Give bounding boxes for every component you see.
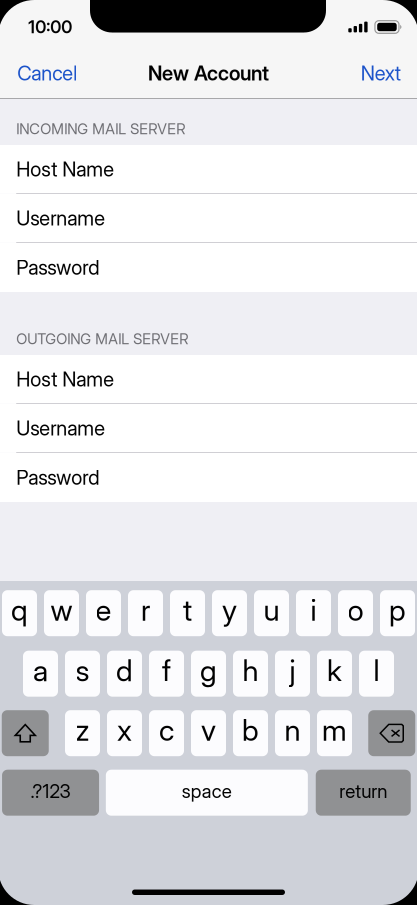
button[interactable]: y [212, 590, 247, 636]
staticText: h [242, 653, 258, 688]
staticText: x [117, 713, 132, 747]
button[interactable]: s [65, 651, 100, 697]
button[interactable]: Delete [368, 710, 415, 756]
button[interactable]: v [191, 710, 226, 756]
staticText: z [75, 713, 89, 747]
button[interactable]: k [317, 651, 352, 697]
button[interactable]: t [170, 590, 205, 636]
button[interactable]: Username [0, 194, 417, 242]
button[interactable]: w [44, 590, 79, 636]
staticText: return [339, 780, 387, 802]
staticText: New Account [148, 61, 269, 85]
button[interactable]: Host Name [0, 355, 417, 403]
staticText: t [183, 593, 192, 627]
staticText: OUTGOING MAIL SERVER [16, 330, 188, 347]
staticText: e [95, 593, 111, 627]
staticText: l [373, 653, 379, 688]
staticText: g [200, 653, 217, 688]
staticText: c [159, 713, 174, 747]
staticText: 10:00 [28, 17, 72, 37]
staticText: r [141, 593, 150, 627]
button[interactable]: Password [0, 243, 417, 292]
button[interactable]: Cancel [0, 49, 96, 98]
staticText: n [284, 713, 300, 747]
button[interactable]: i [296, 590, 331, 636]
staticText: m [322, 713, 347, 747]
button[interactable]: c [149, 710, 184, 756]
button[interactable]: m [317, 710, 352, 756]
staticText: Host Name [16, 367, 114, 391]
button[interactable]: h [233, 651, 268, 697]
staticText: a [33, 653, 48, 688]
button[interactable]: Password [0, 453, 417, 502]
staticText: b [242, 713, 259, 747]
staticText: Username [16, 206, 105, 230]
staticText: Cancel [17, 61, 77, 85]
staticText: p [389, 593, 406, 627]
button[interactable]: Next [343, 49, 417, 98]
button[interactable]: n [275, 710, 310, 756]
staticText: o [347, 593, 363, 627]
button[interactable]: g [191, 651, 226, 697]
staticText: w [50, 593, 72, 627]
staticText: v [201, 713, 216, 747]
staticText: Password [16, 466, 99, 489]
button[interactable]: Shift [2, 710, 49, 756]
button[interactable]: x [107, 710, 142, 756]
staticText: space [182, 780, 232, 802]
staticText: j [289, 653, 295, 688]
button[interactable]: u [254, 590, 289, 636]
staticText: Next [361, 61, 401, 85]
staticText: Password [16, 256, 99, 279]
staticText: k [327, 653, 342, 688]
button[interactable]: q [2, 590, 37, 636]
button[interactable]: o [338, 590, 373, 636]
button[interactable]: f [149, 651, 184, 697]
button[interactable]: e [86, 590, 121, 636]
button[interactable]: space [106, 770, 308, 816]
button[interactable]: p [380, 590, 415, 636]
staticText: Username [16, 416, 105, 440]
button[interactable]: a [23, 651, 58, 697]
button[interactable]: Host Name [0, 145, 417, 193]
button[interactable]: Username [0, 404, 417, 452]
button[interactable]: j [275, 651, 310, 697]
button[interactable]: r [128, 590, 163, 636]
staticText: i [310, 593, 316, 627]
staticText: y [222, 593, 237, 627]
button[interactable]: .?123 [2, 770, 99, 816]
staticText: f [162, 653, 171, 688]
button[interactable]: return [316, 770, 411, 816]
staticText: s [75, 653, 89, 688]
staticText: INCOMING MAIL SERVER [16, 120, 185, 137]
button[interactable]: l [359, 651, 394, 697]
button[interactable]: b [233, 710, 268, 756]
staticText: Host Name [16, 157, 114, 181]
staticText: .?123 [31, 780, 71, 802]
button[interactable]: d [107, 651, 142, 697]
staticText: d [116, 653, 133, 688]
staticText: u [263, 593, 279, 627]
staticText: q [11, 593, 28, 627]
button[interactable]: z [65, 710, 100, 756]
